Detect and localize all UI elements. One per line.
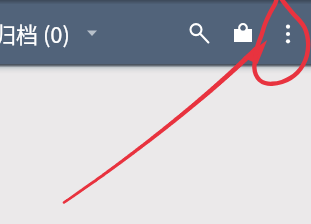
button[interactable]: More options (266, 12, 310, 56)
staticText: 归档 (0) (0, 17, 71, 49)
button[interactable]: 归档 (0) (0, 0, 106, 65)
button[interactable]: Search (177, 11, 221, 55)
button[interactable]: Store (221, 11, 265, 55)
